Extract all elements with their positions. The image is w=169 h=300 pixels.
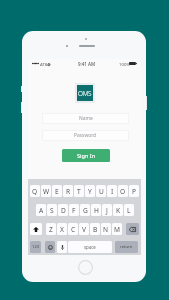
staticText: U — [99, 187, 104, 196]
staticText: S — [50, 206, 54, 215]
button[interactable]: P — [129, 185, 139, 197]
button[interactable]: A — [36, 204, 46, 216]
button[interactable]: S — [47, 204, 57, 216]
button[interactable]: M — [112, 223, 122, 235]
staticText: V — [82, 225, 86, 234]
staticText: K — [116, 206, 121, 215]
staticText: E — [55, 187, 59, 196]
staticText: 100% — [119, 61, 130, 67]
staticText: X — [60, 225, 64, 234]
button[interactable]: Backspace — [126, 223, 139, 235]
staticText: L — [127, 206, 131, 215]
other: Home — [78, 260, 93, 275]
button[interactable]: N — [101, 223, 111, 235]
staticText: N — [103, 225, 109, 234]
button[interactable]: T — [74, 185, 84, 197]
other: Shift — [33, 227, 39, 232]
other: Emoji — [48, 245, 53, 250]
button[interactable]: U — [96, 185, 106, 197]
button[interactable]: W — [41, 185, 51, 197]
button[interactable]: B — [90, 223, 100, 235]
button[interactable]: O — [118, 185, 128, 197]
button[interactable]: E — [52, 185, 62, 197]
button[interactable]: X — [57, 223, 67, 235]
button[interactable]: H — [91, 204, 101, 216]
button[interactable]: K — [113, 204, 123, 216]
staticText: space — [84, 244, 96, 250]
staticText: AT&T — [40, 61, 51, 67]
button[interactable]: Y — [85, 185, 95, 197]
staticText: H — [94, 206, 99, 215]
button[interactable]: OMS — [77, 85, 93, 101]
button[interactable]: 123 — [30, 241, 41, 253]
staticText: OMS — [78, 89, 92, 98]
staticText: O — [120, 187, 126, 196]
staticText: B — [93, 225, 98, 234]
button[interactable]: D — [58, 204, 68, 216]
staticText: Y — [88, 187, 92, 196]
button[interactable]: Q — [30, 185, 40, 197]
staticText: J — [106, 206, 108, 215]
button[interactable]: J — [102, 204, 112, 216]
staticText: M — [114, 225, 120, 234]
button[interactable]: F — [69, 204, 79, 216]
staticText: P — [132, 187, 136, 196]
other: Dictate — [61, 245, 64, 250]
button[interactable]: Password — [42, 130, 129, 141]
button[interactable]: Dictate — [57, 241, 67, 253]
staticText: A — [39, 206, 44, 215]
button[interactable]: R — [63, 185, 73, 197]
staticText: return — [120, 244, 133, 250]
staticText: R — [66, 187, 71, 196]
button[interactable]: return — [115, 241, 138, 253]
staticText: Name — [79, 115, 93, 122]
button[interactable]: V — [79, 223, 89, 235]
button[interactable]: Z — [46, 223, 56, 235]
staticText: 9:41 AM — [78, 61, 96, 67]
staticText: Password — [74, 132, 97, 139]
button[interactable]: I — [107, 185, 117, 197]
staticText: Z — [49, 225, 53, 234]
staticText: T — [77, 187, 81, 196]
staticText: Sign In — [77, 152, 96, 160]
button[interactable]: Shift — [30, 223, 42, 235]
staticText: C — [71, 225, 76, 234]
button[interactable]: Emoji — [45, 241, 55, 253]
button[interactable]: L — [124, 204, 134, 216]
staticText: I — [111, 187, 114, 196]
button[interactable]: space — [68, 241, 112, 253]
staticText: 123 — [32, 244, 40, 250]
staticText: F — [72, 206, 76, 215]
staticText: W — [43, 187, 50, 196]
button[interactable]: G — [80, 204, 90, 216]
button[interactable]: Name — [42, 113, 129, 124]
staticText: G — [83, 206, 88, 215]
other: Backspace — [129, 227, 136, 232]
button[interactable]: Sign In — [62, 149, 110, 162]
staticText: D — [61, 206, 66, 215]
staticText: Q — [32, 187, 38, 196]
button[interactable]: C — [68, 223, 78, 235]
